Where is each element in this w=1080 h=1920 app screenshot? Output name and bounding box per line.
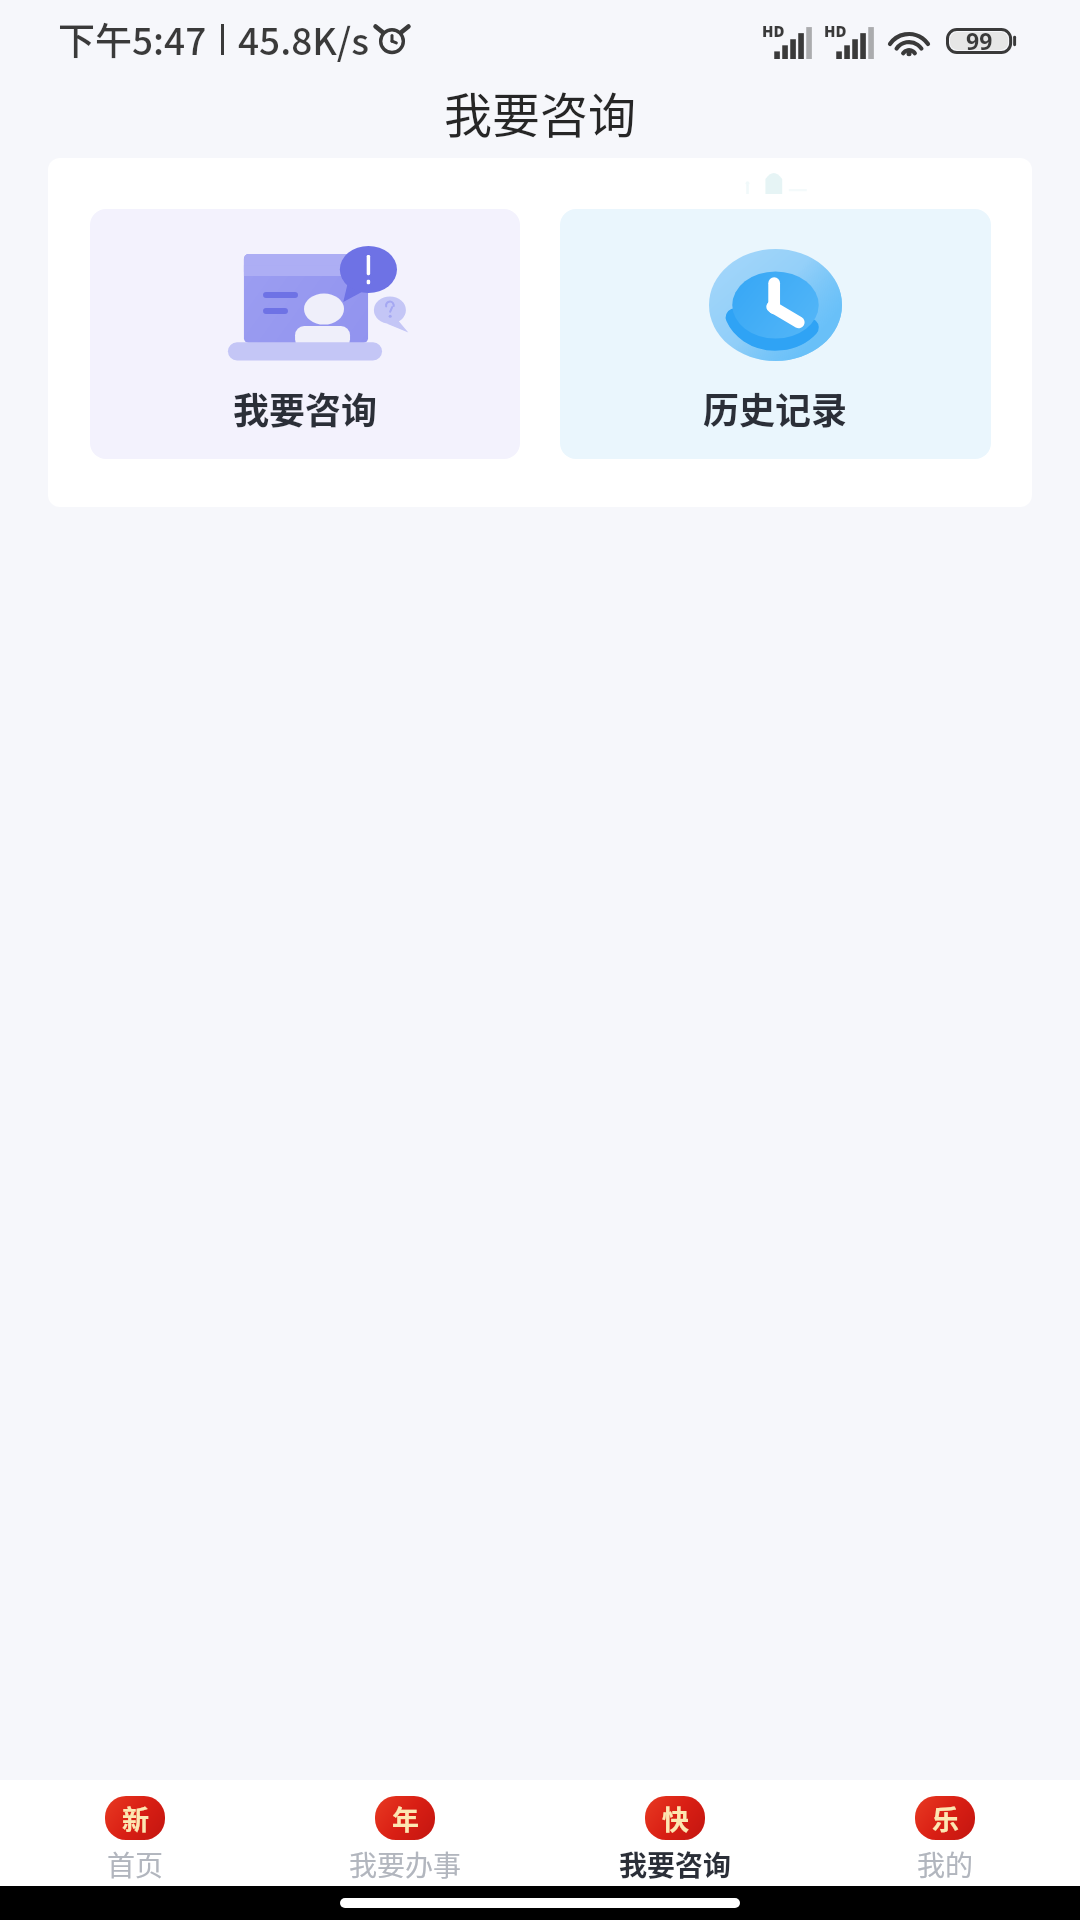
button[interactable]: 年 (270, 1780, 540, 1886)
staticText: 快 (662, 1799, 689, 1838)
other: Mobile signal (762, 21, 812, 59)
staticText: 年 (392, 1799, 419, 1838)
staticText: 我要咨询 (233, 382, 378, 434)
other: Mobile signal (824, 21, 874, 59)
button[interactable]: 新 (0, 1780, 270, 1886)
staticText: 我要咨询 (619, 1844, 732, 1885)
other: Battery 99 percent (946, 25, 1016, 56)
staticText: 下午5:47 (58, 12, 207, 66)
staticText: 我要咨询 (444, 77, 637, 147)
staticText: HD (762, 21, 785, 41)
other: Alarm (374, 21, 410, 57)
button[interactable]: 历史记录 (560, 209, 991, 459)
staticText: 乐 (932, 1799, 959, 1838)
staticText: 我要办事 (349, 1844, 462, 1885)
button[interactable]: 乐 (810, 1780, 1080, 1886)
staticText: 45.8K/s (238, 12, 370, 66)
staticText: HD (824, 21, 847, 41)
staticText: 首页 (107, 1844, 164, 1885)
button[interactable]: 我要咨询 (90, 209, 520, 459)
button[interactable]: 快 (540, 1780, 810, 1886)
staticText: 我的 (917, 1844, 974, 1885)
staticText: 99 (966, 25, 993, 56)
staticText: 新 (122, 1799, 149, 1838)
staticText: 历史记录 (703, 382, 848, 434)
other: Wi-Fi (886, 22, 932, 58)
